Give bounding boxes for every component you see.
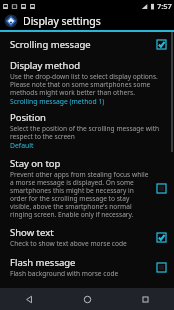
staticText: Flash background with morse code [10, 269, 119, 278]
button[interactable]: Unchecked [155, 261, 168, 274]
staticText: Use the drop-down list to select display… [10, 72, 166, 97]
staticText: Stay on top [10, 157, 61, 170]
button[interactable]: Flash message [0, 254, 174, 280]
button[interactable]: Recent apps [116, 288, 174, 310]
button[interactable]: Stay on top [0, 155, 174, 221]
button[interactable]: Display settings [0, 12, 174, 30]
staticText: Default [10, 141, 34, 150]
button[interactable]: Show text [0, 224, 174, 250]
staticText: Scrolling message (method 1) [10, 97, 105, 106]
staticText: Display method [10, 59, 81, 72]
button[interactable]: Unchecked [155, 182, 168, 195]
button[interactable]: Checked [155, 231, 168, 244]
button[interactable]: Back [0, 288, 58, 310]
staticText: Flash message [10, 256, 76, 269]
button[interactable]: Home [58, 288, 116, 310]
staticText: Scrolling message [10, 38, 91, 51]
button[interactable]: Checked [155, 38, 168, 51]
staticText: Select the position of the scrolling mes… [10, 124, 166, 141]
button[interactable]: Scrolling message [0, 36, 174, 53]
staticText: 7:57 [157, 1, 172, 11]
button[interactable]: Position [0, 110, 174, 151]
staticText: Position [10, 111, 46, 124]
staticText: Display settings [23, 14, 101, 28]
staticText: Show text [10, 226, 54, 239]
staticText: Prevent other apps from stealing focus w… [10, 170, 149, 219]
staticText: Check to show text above morse code [10, 239, 127, 248]
button[interactable]: Display method [0, 58, 174, 107]
